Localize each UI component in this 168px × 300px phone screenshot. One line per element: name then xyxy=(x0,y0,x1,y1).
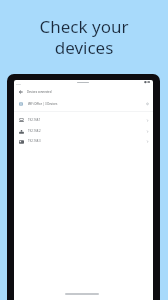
button[interactable]: 192.168.3 xyxy=(14,136,153,146)
staticText: 9:30 xyxy=(16,82,21,85)
staticText: 192.168.3 xyxy=(28,139,41,143)
button[interactable]: Back xyxy=(17,88,24,95)
staticText: WiFi Office | 3 Devices xyxy=(28,102,58,106)
button[interactable]: 192.168.2 xyxy=(14,126,153,136)
staticText: Devices connected xyxy=(27,90,52,94)
staticText: 192.168.2 xyxy=(28,129,41,133)
other: Status icons xyxy=(144,81,148,83)
staticText: Check your devices xyxy=(0,15,168,59)
staticText: 192.168.1 xyxy=(28,118,41,122)
button[interactable]: WiFi Office | 3 Devices xyxy=(14,98,153,109)
button[interactable]: 192.168.1 xyxy=(14,115,153,125)
